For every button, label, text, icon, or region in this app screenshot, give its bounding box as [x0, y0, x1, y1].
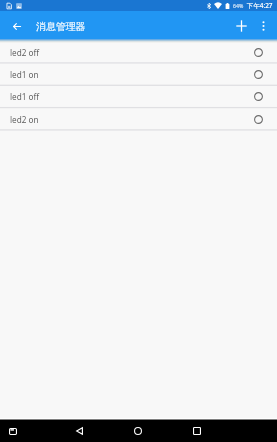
- staticText: led1 off: [10, 91, 40, 102]
- staticText: 64%: [233, 2, 244, 9]
- button[interactable]: Back: [5, 11, 29, 39]
- button[interactable]: led1 on: [0, 63, 277, 85]
- button[interactable]: Screenshot: [2, 420, 23, 442]
- button[interactable]: Add: [229, 11, 253, 39]
- button[interactable]: Home: [127, 420, 149, 442]
- button[interactable]: led1 off: [0, 85, 277, 107]
- staticText: led2 on: [10, 114, 39, 125]
- button[interactable]: Back: [68, 420, 90, 442]
- button[interactable]: led2 off: [0, 41, 277, 63]
- button[interactable]: Recent apps: [186, 420, 208, 442]
- staticText: led2 off: [10, 47, 40, 58]
- button[interactable]: More options: [253, 11, 273, 39]
- staticText: 消息管理器: [36, 20, 86, 32]
- staticText: 下午4:27: [247, 1, 273, 10]
- staticText: led1 on: [10, 69, 39, 80]
- button[interactable]: led2 on: [0, 108, 277, 130]
